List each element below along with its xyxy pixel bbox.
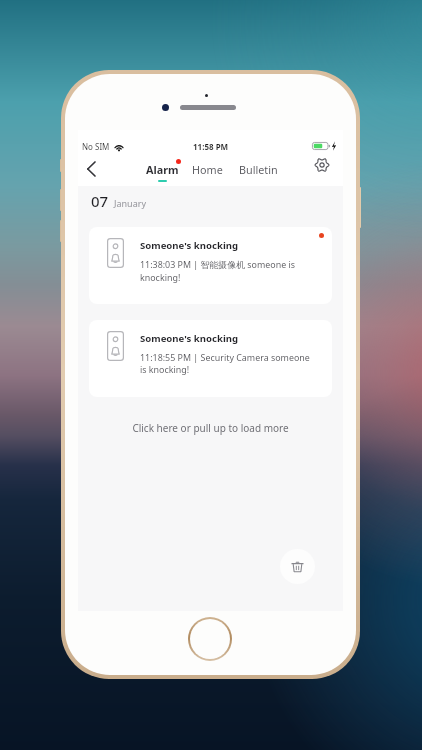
button[interactable]: Home [188, 161, 227, 184]
staticText: 07 [91, 191, 109, 211]
button[interactable]: Click here or pull up to load more [78, 419, 343, 437]
staticText: Someone's knocking [140, 239, 239, 252]
button[interactable]: Bulletin [235, 161, 282, 184]
button[interactable]: Delete [280, 549, 315, 584]
staticText: January [114, 197, 146, 209]
staticText: No SIM [82, 141, 110, 152]
button[interactable]: Someone's knocking [89, 320, 332, 397]
button[interactable]: Alarm [142, 161, 183, 184]
staticText: 11:38:03 PM | 智能摄像机 someone is knocking! [140, 258, 318, 283]
staticText: Click here or pull up to load more [132, 421, 289, 435]
staticText: Bulletin [239, 162, 278, 177]
button[interactable]: Settings [312, 157, 334, 179]
button[interactable]: Someone's knocking [89, 227, 332, 304]
button[interactable]: Back [80, 158, 101, 179]
staticText: Someone's knocking [140, 332, 239, 345]
staticText: Home [192, 162, 223, 177]
staticText: 11:18:55 PM | Security Camera someone is… [140, 351, 318, 375]
staticText: 11:58 PM [193, 141, 229, 152]
staticText: Alarm [146, 162, 179, 177]
